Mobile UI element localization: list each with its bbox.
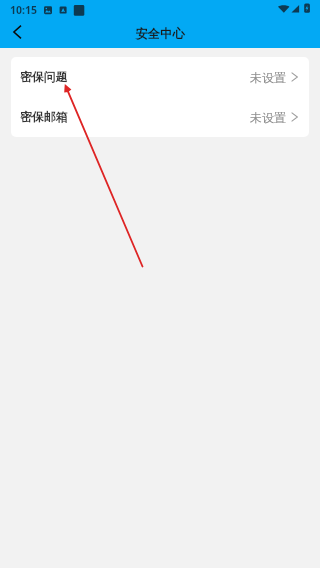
button[interactable]: 密保邮箱 xyxy=(11,97,309,137)
staticText: 密保邮箱 xyxy=(20,110,68,125)
staticText: 密保问题 xyxy=(20,70,68,85)
button[interactable]: 密保问题 xyxy=(11,57,309,97)
staticText: 未设置 xyxy=(250,110,286,125)
staticText: 10:15 xyxy=(10,3,37,17)
button[interactable]: Back xyxy=(0,20,34,48)
staticText: 未设置 xyxy=(250,70,286,85)
staticText: 安全中心 xyxy=(135,26,185,41)
